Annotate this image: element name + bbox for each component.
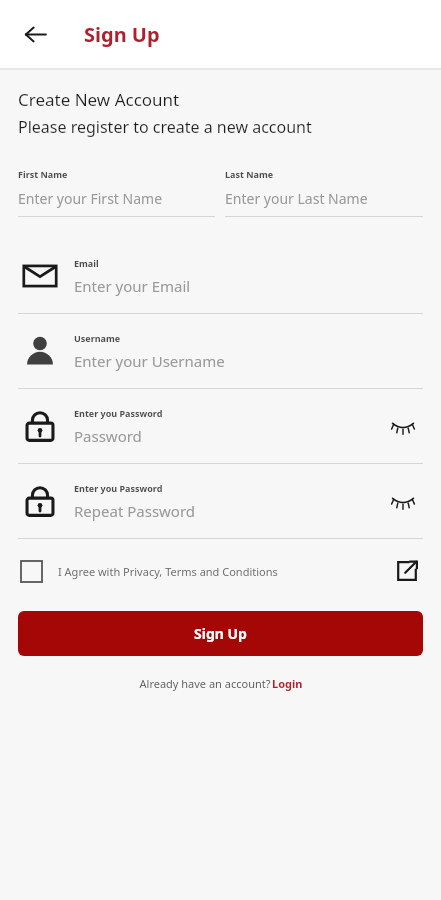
button[interactable]: Enter you Password [18,389,423,464]
staticText: Enter you Password [74,407,163,419]
button[interactable]: Show password [383,481,423,521]
button[interactable]: Username [18,314,423,389]
button[interactable]: Enter you Password [18,464,423,539]
staticText: Login [272,676,303,691]
staticText: Enter your Username [74,351,225,371]
staticText: Password [74,426,142,446]
button[interactable]: Email [18,239,423,314]
staticText: Create New Account [18,88,180,111]
button[interactable]: Show password [383,406,423,446]
button[interactable]: Last Name [225,168,423,217]
staticText: I Agree with Privacy, Terms and Conditio… [58,564,391,579]
staticText: Username [74,332,121,344]
button[interactable]: First Name [18,168,215,217]
staticText: Sign Up [194,624,247,643]
button[interactable]: Back [14,13,56,55]
staticText: Enter you Password [74,482,163,494]
button[interactable]: Open terms and conditions [391,555,423,587]
staticText: Email [74,257,99,269]
button[interactable]: Login [272,676,303,691]
staticText: Last Name [225,168,274,180]
button[interactable]: Agree to terms [18,558,44,584]
staticText: Enter your Email [74,276,191,296]
staticText: First Name [18,168,68,180]
staticText: Enter your Last Name [225,189,368,208]
staticText: Enter your First Name [18,189,163,208]
staticText: Repeat Password [74,501,196,521]
button[interactable]: Sign Up [18,611,423,656]
staticText: Already have an account? [138,676,272,691]
staticText: Please register to create a new account [18,116,312,138]
staticText: Sign Up [84,21,160,48]
